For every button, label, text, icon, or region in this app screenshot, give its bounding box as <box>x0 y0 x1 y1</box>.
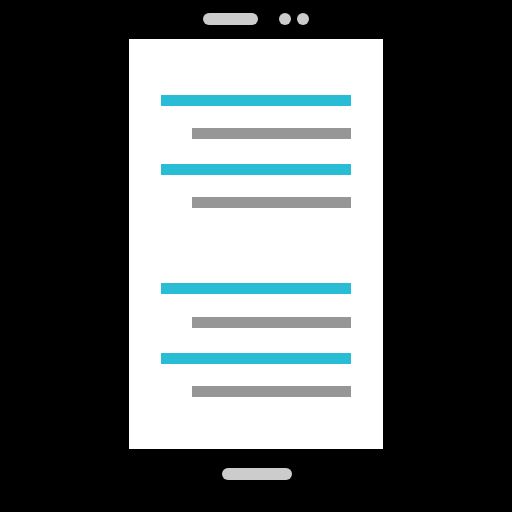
other: Proximity sensor <box>279 13 291 25</box>
button[interactable]: Home <box>222 468 292 480</box>
other: Front camera <box>297 13 309 25</box>
other: Earpiece speaker <box>203 13 258 25</box>
